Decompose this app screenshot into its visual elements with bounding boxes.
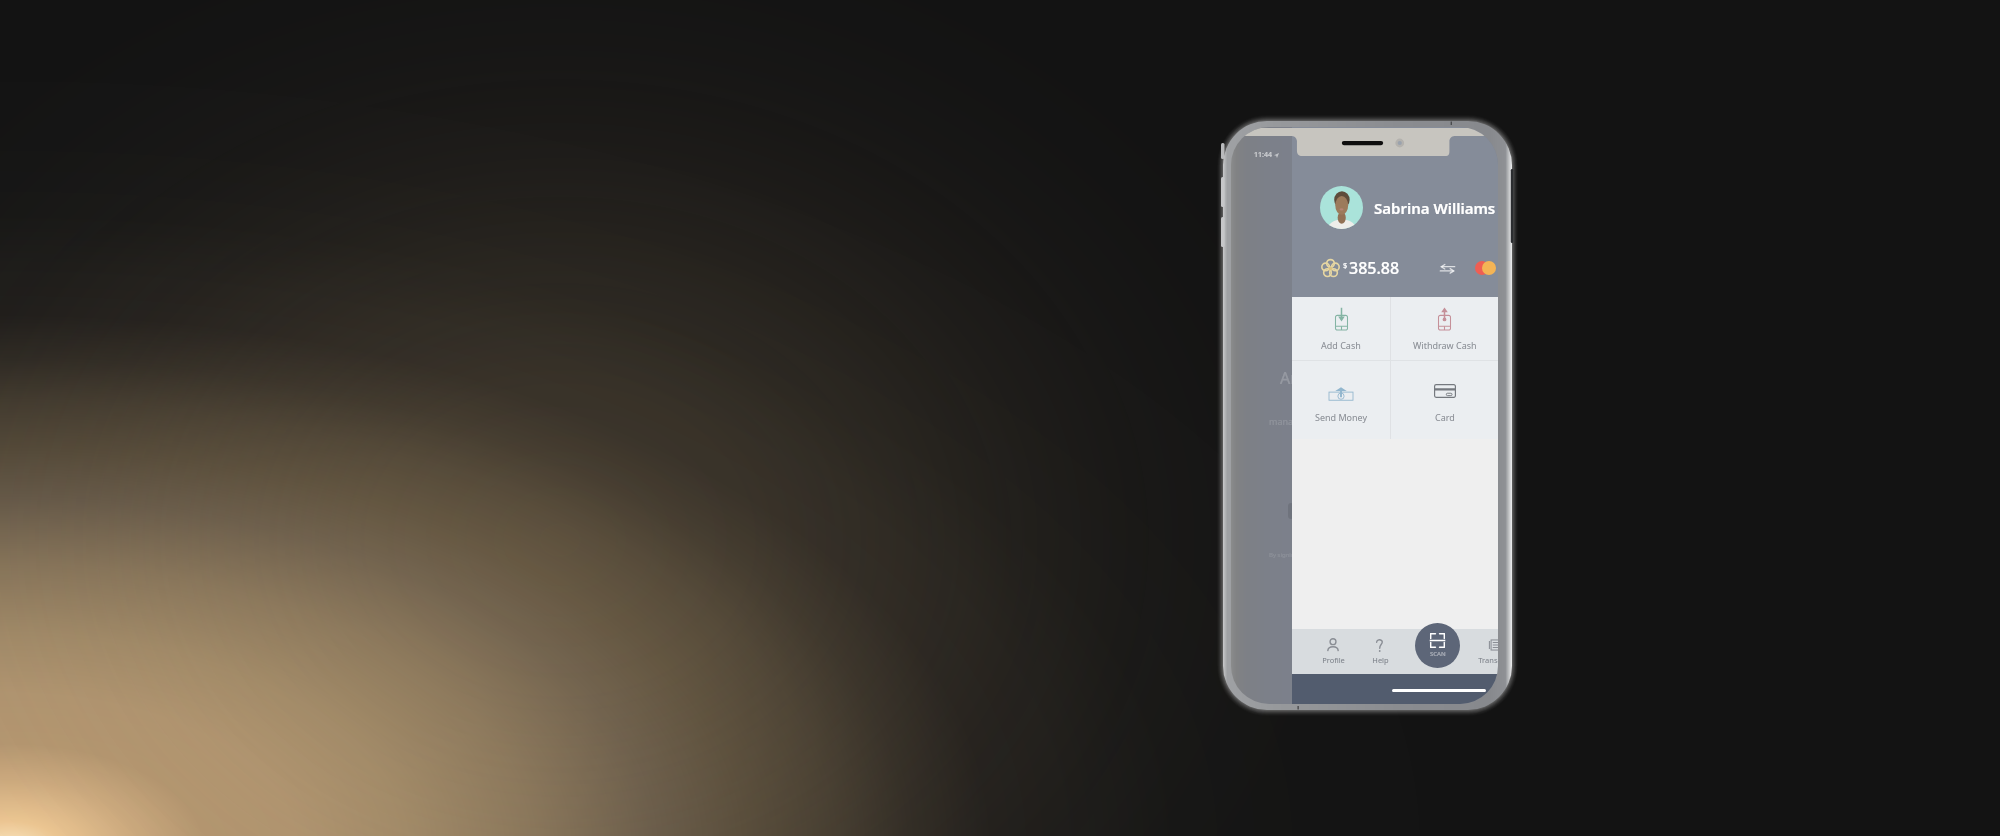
button[interactable]: Sabrina Williams xyxy=(1320,186,1496,229)
staticText: Send Money xyxy=(1315,411,1368,423)
staticText: Profile xyxy=(1322,655,1345,665)
staticText: By signing up xyxy=(1269,551,1308,559)
button[interactable]: Card xyxy=(1391,361,1498,439)
button[interactable]: Scan xyxy=(1415,623,1460,668)
button[interactable]: Transactions xyxy=(1478,629,1498,674)
staticText: Amazing xyxy=(1280,367,1346,389)
button[interactable]: Add Cash xyxy=(1292,297,1390,360)
button[interactable]: Send Money xyxy=(1292,361,1390,439)
staticText: Transactions xyxy=(1478,655,1498,665)
button[interactable]: Withdraw Cash xyxy=(1391,297,1498,360)
staticText: Sabrina Williams xyxy=(1374,198,1496,218)
button[interactable]: Mastercard xyxy=(1474,261,1497,275)
staticText: Card xyxy=(1435,411,1455,423)
staticText: 385.88 xyxy=(1349,257,1400,279)
button[interactable]: Help xyxy=(1363,629,1397,674)
staticText: Add Cash xyxy=(1321,339,1361,351)
button[interactable]: Profile xyxy=(1316,629,1350,674)
staticText: Help xyxy=(1372,655,1389,665)
button[interactable]: Exchange currency xyxy=(1436,257,1458,279)
staticText: Withdraw Cash xyxy=(1413,339,1477,351)
staticText: $ xyxy=(1343,260,1348,270)
staticText: manage your money xyxy=(1269,415,1357,427)
staticText: 11:44 xyxy=(1254,150,1272,160)
staticText: SCAN xyxy=(1430,650,1446,658)
